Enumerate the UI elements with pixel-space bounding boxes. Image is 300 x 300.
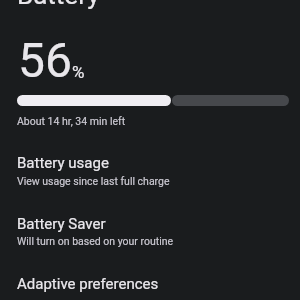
button[interactable]: Battery Saver [0, 206, 300, 254]
staticText: 56 [18, 32, 72, 88]
button[interactable]: Adaptive preferences [0, 266, 300, 300]
staticText: Battery usage [17, 154, 109, 172]
staticText: About 14 hr, 34 min left [17, 115, 126, 127]
staticText: Adaptive preferences [17, 275, 159, 293]
staticText: View usage since last full charge [17, 175, 170, 187]
button[interactable]: Battery usage [0, 145, 300, 193]
staticText: Battery Saver [17, 215, 106, 233]
staticText: Battery [17, 0, 100, 10]
other: Battery level 56 percent [17, 95, 289, 106]
staticText: Will turn on based on your routine [17, 235, 174, 247]
staticText: % [72, 62, 85, 82]
